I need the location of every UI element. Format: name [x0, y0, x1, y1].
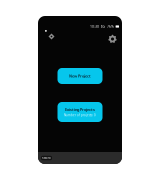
staticText: 4G	[101, 24, 106, 29]
button[interactable]: Record	[41, 156, 52, 160]
staticText: 10:30	[90, 24, 99, 29]
button[interactable]: New Project	[57, 68, 102, 84]
staticText: Existing Projects	[65, 107, 95, 112]
button[interactable]: Location	[47, 32, 56, 41]
button[interactable]: Existing Projects	[57, 102, 102, 122]
staticText: Record	[42, 156, 51, 160]
staticText: New Project	[69, 73, 91, 79]
staticText: 76%	[107, 24, 114, 29]
button[interactable]: Settings	[107, 33, 118, 44]
staticText: Number of projects: 0	[64, 113, 96, 117]
